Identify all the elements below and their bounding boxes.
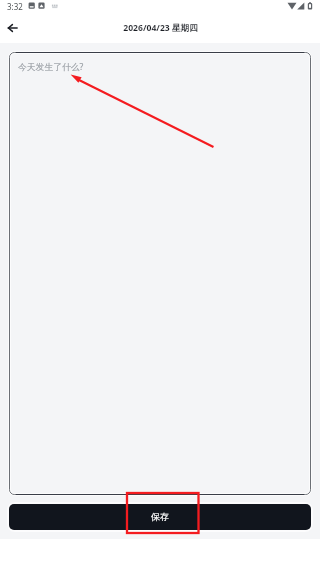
staticText: 保存 bbox=[151, 511, 169, 522]
button[interactable]: Back bbox=[4, 18, 24, 38]
staticText: 2026/04/23 星期四 bbox=[123, 22, 198, 34]
button[interactable]: 保存 bbox=[9, 504, 311, 530]
button[interactable]: 今天发生了什么? bbox=[8, 51, 312, 496]
staticText: 今天发生了什么? bbox=[18, 61, 84, 73]
staticText: 3:32 bbox=[7, 1, 23, 12]
